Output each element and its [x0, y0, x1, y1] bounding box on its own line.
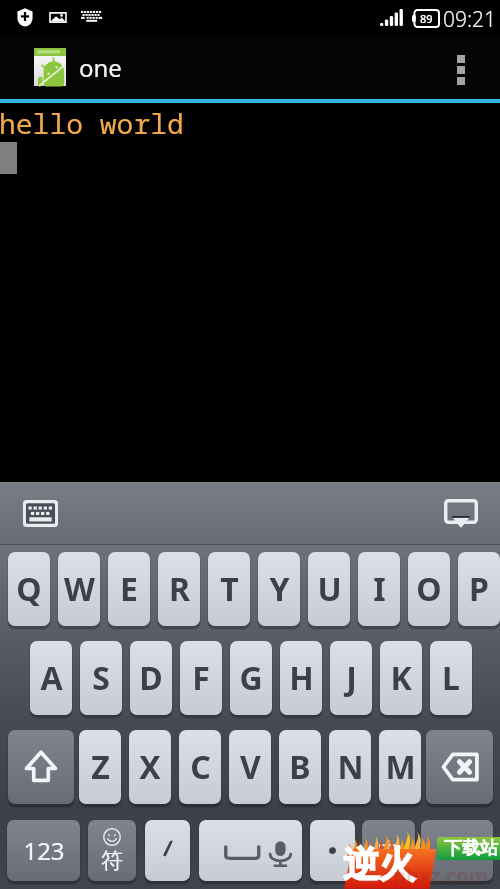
- button[interactable]: L: [430, 641, 472, 715]
- button[interactable]: Backspace: [426, 730, 493, 804]
- staticText: Z: [91, 745, 110, 789]
- staticText: 09:21: [443, 5, 497, 34]
- staticText: Q: [16, 567, 42, 611]
- button[interactable]: More options: [432, 34, 488, 99]
- button[interactable]: X: [129, 730, 171, 804]
- button[interactable]: W: [58, 552, 100, 626]
- staticText: H: [289, 656, 314, 700]
- button[interactable]: Q: [8, 552, 50, 626]
- button[interactable]: Enter: [421, 820, 493, 881]
- button[interactable]: H: [280, 641, 322, 715]
- staticText: N: [337, 745, 364, 789]
- staticText: R: [169, 567, 190, 611]
- staticText: A: [40, 656, 63, 700]
- staticText: hello world: [0, 104, 184, 142]
- button[interactable]: P: [458, 552, 500, 626]
- button[interactable]: U: [308, 552, 350, 626]
- staticText: 123: [23, 834, 65, 867]
- button[interactable]: Switch keyboard: [16, 493, 64, 533]
- staticText: C: [190, 745, 211, 789]
- button[interactable]: Shift: [8, 730, 74, 804]
- button[interactable]: K: [380, 641, 422, 715]
- button[interactable]: N: [329, 730, 371, 804]
- button[interactable]: G: [230, 641, 272, 715]
- button[interactable]: J: [330, 641, 372, 715]
- staticText: S: [92, 656, 110, 700]
- button[interactable]: Symbols: [88, 820, 136, 881]
- staticText: V: [240, 745, 261, 789]
- button[interactable]: 123: [7, 820, 80, 881]
- button[interactable]: I: [358, 552, 400, 626]
- button[interactable]: B: [279, 730, 321, 804]
- staticText: one: [79, 51, 122, 84]
- button[interactable]: V: [229, 730, 271, 804]
- button[interactable]: A: [30, 641, 72, 715]
- staticText: 逆火: [343, 842, 415, 887]
- button[interactable]: 中: [362, 820, 415, 881]
- staticText: I: [373, 567, 386, 611]
- button[interactable]: Period: [310, 820, 355, 881]
- staticText: O: [416, 567, 442, 611]
- staticText: U: [317, 567, 342, 611]
- button[interactable]: O: [408, 552, 450, 626]
- staticText: P: [469, 567, 489, 611]
- staticText: T: [220, 567, 239, 611]
- staticText: J: [346, 656, 357, 700]
- staticText: 中: [378, 837, 400, 865]
- staticText: X: [139, 745, 161, 789]
- staticText: B: [289, 745, 311, 789]
- button[interactable]: Hide keyboard: [437, 493, 485, 533]
- button[interactable]: R: [158, 552, 200, 626]
- staticText: nhxz.com: [393, 862, 489, 889]
- button[interactable]: Space: [199, 820, 302, 881]
- button[interactable]: D: [130, 641, 172, 715]
- button[interactable]: Comma: [145, 820, 190, 881]
- staticText: 89: [420, 11, 433, 26]
- staticText: K: [390, 656, 412, 700]
- staticText: D: [139, 656, 163, 700]
- button[interactable]: S: [80, 641, 122, 715]
- button[interactable]: E: [108, 552, 150, 626]
- button[interactable]: Y: [258, 552, 300, 626]
- staticText: 下载站: [444, 837, 498, 860]
- button[interactable]: C: [179, 730, 221, 804]
- staticText: G: [239, 656, 263, 700]
- button[interactable]: F: [180, 641, 222, 715]
- staticText: M: [385, 745, 416, 789]
- staticText: E: [120, 567, 138, 611]
- staticText: 符: [101, 847, 123, 875]
- button[interactable]: T: [208, 552, 250, 626]
- staticText: F: [192, 656, 210, 700]
- button[interactable]: M: [379, 730, 421, 804]
- staticText: W: [64, 567, 95, 611]
- staticText: L: [442, 656, 460, 700]
- button[interactable]: Z: [79, 730, 121, 804]
- staticText: Y: [269, 567, 290, 611]
